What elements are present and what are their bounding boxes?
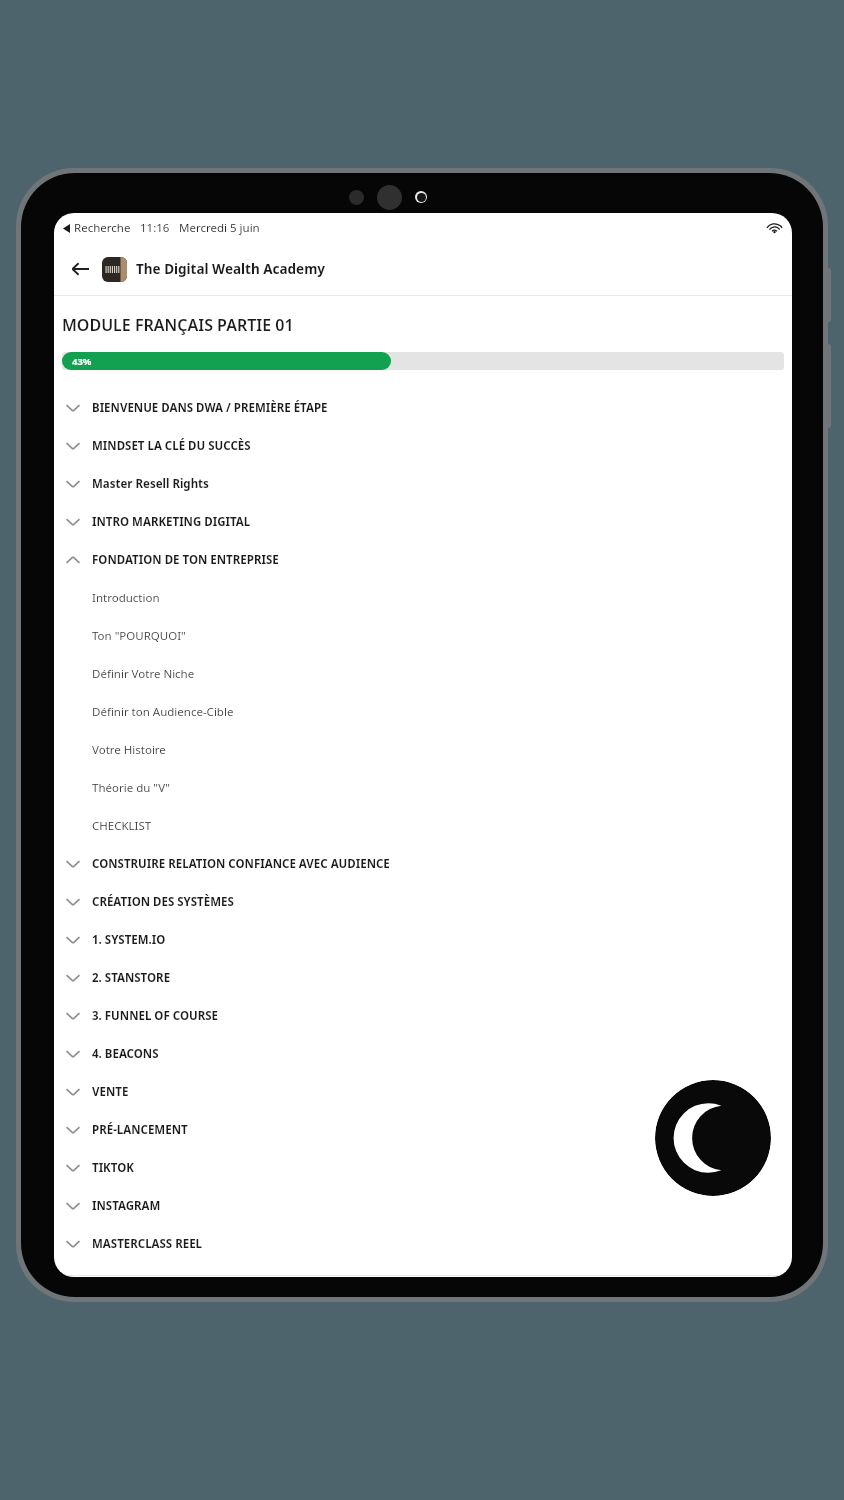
staticText: TIKTOK — [92, 1160, 134, 1176]
button[interactable]: CHECKLIST — [54, 807, 792, 845]
staticText: INSTAGRAM — [92, 1198, 161, 1214]
staticText: CRÉATION DES SYSTÈMES — [92, 894, 234, 910]
button[interactable]: Définir Votre Niche — [54, 655, 792, 693]
button[interactable]: 2. STANSTORE — [54, 959, 792, 997]
staticText: BIENVENUE DANS DWA / PREMIÈRE ÉTAPE — [92, 400, 328, 416]
button[interactable]: 1. SYSTEM.IO — [54, 921, 792, 959]
staticText: Ton "POURQUOI" — [92, 628, 186, 644]
button[interactable]: CRÉATION DES SYSTÈMES — [54, 883, 792, 921]
button[interactable]: INSTAGRAM — [54, 1187, 792, 1225]
staticText: 4. BEACONS — [92, 1046, 159, 1062]
staticText: Mercredi 5 juin — [179, 220, 260, 236]
staticText: 43% — [72, 355, 92, 368]
button[interactable]: INTRO MARKETING DIGITAL — [54, 503, 792, 541]
staticText: MODULE FRANÇAIS PARTIE 01 — [62, 314, 294, 336]
button[interactable]: Open chat widget — [655, 1080, 771, 1196]
staticText: INTRO MARKETING DIGITAL — [92, 514, 251, 530]
staticText: 2. STANSTORE — [92, 970, 171, 986]
button[interactable]: MINDSET LA CLÉ DU SUCCÈS — [54, 427, 792, 465]
staticText: 3. FUNNEL OF COURSE — [92, 1008, 219, 1024]
button[interactable]: MASTERCLASS REEL — [54, 1225, 792, 1263]
staticText: CHECKLIST — [92, 818, 152, 834]
staticText: Master Resell Rights — [92, 476, 209, 492]
button[interactable]: Définir ton Audience-Cible — [54, 693, 792, 731]
button[interactable]: TIKTOK — [54, 1149, 792, 1187]
button[interactable]: Introduction — [54, 579, 792, 617]
button[interactable]: CONSTRUIRE RELATION CONFIANCE AVEC AUDIE… — [54, 845, 792, 883]
button[interactable]: 4. BEACONS — [54, 1035, 792, 1073]
staticText: Votre Histoire — [92, 742, 166, 758]
staticText: Théorie du "V" — [92, 780, 170, 796]
staticText: FONDATION DE TON ENTREPRISE — [92, 552, 279, 568]
staticText: Recherche — [74, 220, 131, 236]
button[interactable]: Master Resell Rights — [54, 465, 792, 503]
button[interactable]: Théorie du "V" — [54, 769, 792, 807]
staticText: MINDSET LA CLÉ DU SUCCÈS — [92, 438, 251, 454]
staticText: Définir Votre Niche — [92, 666, 195, 682]
staticText: 1. SYSTEM.IO — [92, 932, 166, 948]
staticText: 11:16 — [140, 220, 170, 236]
staticText: CONSTRUIRE RELATION CONFIANCE AVEC AUDIE… — [92, 856, 390, 872]
button[interactable]: Ton "POURQUOI" — [54, 617, 792, 655]
staticText: VENTE — [92, 1084, 129, 1100]
staticText: The Digital Wealth Academy — [136, 260, 326, 278]
button[interactable]: FONDATION DE TON ENTREPRISE — [54, 541, 792, 579]
staticText: Introduction — [92, 590, 160, 606]
staticText: Définir ton Audience-Cible — [92, 704, 234, 720]
staticText: PRÉ-LANCEMENT — [92, 1122, 188, 1138]
staticText: MASTERCLASS REEL — [92, 1236, 203, 1252]
button[interactable]: PRÉ-LANCEMENT — [54, 1111, 792, 1149]
button[interactable]: VENTE — [54, 1073, 792, 1111]
button[interactable]: Back — [62, 251, 98, 287]
button[interactable]: Votre Histoire — [54, 731, 792, 769]
button[interactable]: 3. FUNNEL OF COURSE — [54, 997, 792, 1035]
button[interactable]: BIENVENUE DANS DWA / PREMIÈRE ÉTAPE — [54, 389, 792, 427]
